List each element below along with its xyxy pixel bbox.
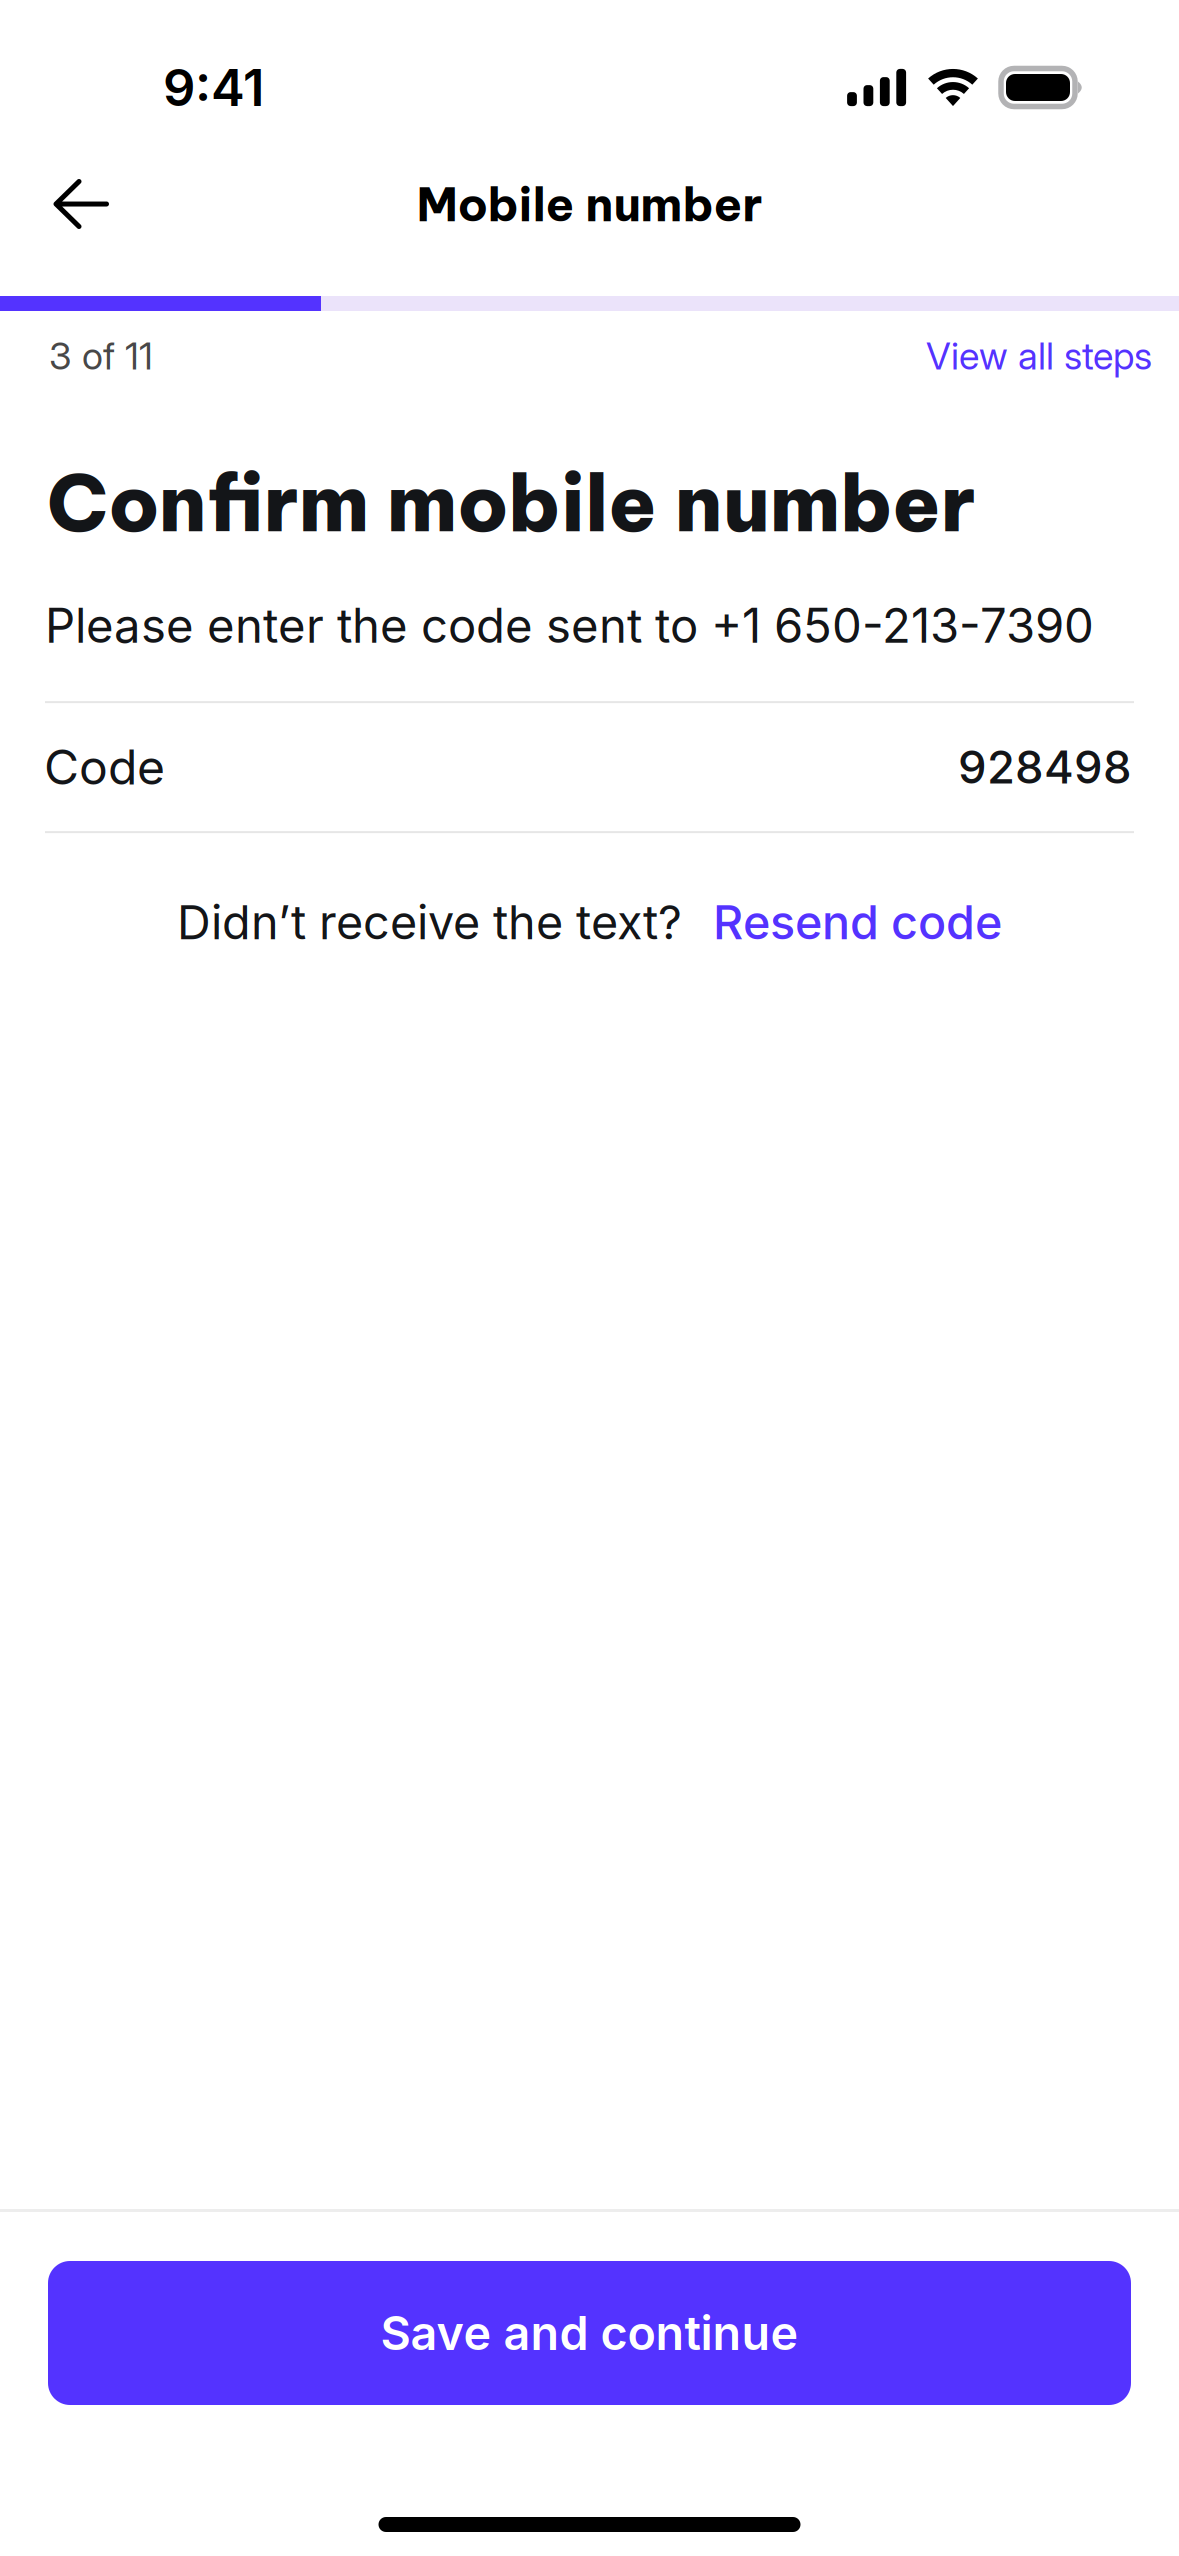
button[interactable]: Save and continue <box>48 2261 1131 2405</box>
button[interactable]: Back <box>0 156 137 252</box>
staticText: Save and continue <box>380 2305 798 2361</box>
staticText: Confirm mobile number <box>47 453 976 552</box>
staticText: 3 of 11 <box>49 333 153 379</box>
staticText: Please enter the code sent to +1 650-213… <box>45 597 1094 654</box>
staticText: 9:41 <box>163 57 264 118</box>
staticText: View all steps <box>926 333 1152 379</box>
staticText: Didn’t receive the text? <box>177 894 682 951</box>
staticText: 928498 <box>958 740 1132 795</box>
button[interactable]: Resend code <box>713 894 1002 951</box>
staticText: Resend code <box>713 894 1002 951</box>
button[interactable]: View all steps <box>926 333 1152 379</box>
staticText: Mobile number <box>416 174 762 233</box>
staticText: Code <box>44 738 165 796</box>
